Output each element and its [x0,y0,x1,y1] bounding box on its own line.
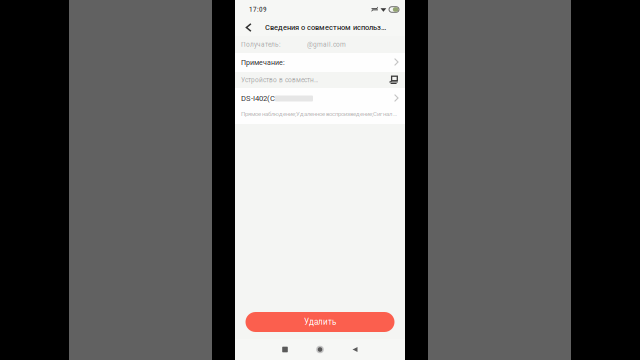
button[interactable]: Примечание: [235,53,405,72]
button[interactable]: DS-I402(C [235,88,405,124]
button[interactable]: Back [344,339,366,360]
staticText: Устройство в совместн… [241,76,318,84]
button[interactable]: Home [309,339,331,360]
staticText: Примечание: [241,58,285,67]
staticText: 17:09 [249,6,267,13]
staticText: Прямое наблюдение;Удаленное воспроизведе… [241,110,399,117]
button[interactable]: Удалить [245,312,394,332]
staticText: Получатель: [241,41,281,48]
staticText: @gmail.com [307,41,346,48]
staticText: Сведения о совместном использ… [265,23,386,32]
staticText: DS-I402(C [241,94,275,103]
staticText: Удалить [304,317,336,327]
button[interactable]: Recents [274,339,296,360]
button[interactable]: Back [240,19,257,36]
